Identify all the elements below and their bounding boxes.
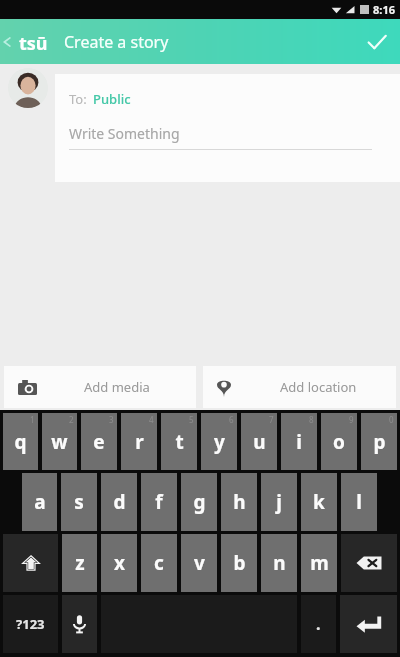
button[interactable]: a <box>22 473 57 531</box>
staticText: 5 <box>189 414 194 425</box>
button[interactable]: Add location <box>203 366 396 408</box>
button[interactable]: d <box>101 473 137 531</box>
staticText: m <box>310 550 329 576</box>
staticText: 4 <box>149 414 154 425</box>
staticText: j <box>276 489 282 515</box>
button[interactable]: m <box>301 534 337 592</box>
staticText: t <box>175 429 184 455</box>
staticText: q <box>14 429 27 455</box>
button[interactable]: x <box>101 534 137 592</box>
staticText: y <box>214 429 225 455</box>
staticText: f <box>155 489 163 515</box>
staticText: 6 <box>229 414 234 425</box>
staticText: Create a story <box>64 31 169 53</box>
button[interactable]: . <box>301 595 336 653</box>
button[interactable]: t <box>161 413 197 470</box>
button[interactable]: To: <box>55 74 400 182</box>
button[interactable]: n <box>261 534 297 592</box>
staticText: 7 <box>269 414 274 425</box>
button[interactable]: Delete <box>341 534 397 592</box>
staticText: r <box>135 429 144 455</box>
button[interactable]: l <box>341 473 377 531</box>
button[interactable]: q <box>3 413 38 470</box>
staticText: 2 <box>69 414 74 425</box>
staticText: s <box>74 489 84 515</box>
staticText: b <box>233 550 246 576</box>
staticText: i <box>296 429 302 455</box>
staticText: v <box>194 550 205 576</box>
staticText: a <box>34 489 46 515</box>
button[interactable]: f <box>141 473 177 531</box>
button[interactable]: p <box>361 413 397 470</box>
button[interactable]: Enter <box>340 595 397 653</box>
staticText: 9 <box>349 414 354 425</box>
button[interactable]: Shift <box>3 534 58 592</box>
staticText: Write Something <box>69 124 180 143</box>
staticText: o <box>333 429 345 455</box>
staticText: x <box>114 550 125 576</box>
staticText: ?123 <box>16 615 45 633</box>
staticText: 8:16 <box>373 2 395 17</box>
staticText: w <box>51 429 68 455</box>
staticText: u <box>253 429 266 455</box>
staticText: 1 <box>30 414 35 425</box>
button[interactable]: k <box>301 473 337 531</box>
staticText: Public <box>93 90 131 108</box>
button[interactable]: ?123 <box>3 595 58 653</box>
button[interactable]: w <box>42 413 77 470</box>
button[interactable]: g <box>181 473 217 531</box>
button[interactable]: e <box>81 413 117 470</box>
button[interactable]: v <box>181 534 217 592</box>
button[interactable]: r <box>121 413 157 470</box>
button[interactable]: h <box>221 473 257 531</box>
staticText: n <box>273 550 286 576</box>
staticText: To: <box>69 90 87 108</box>
button[interactable]: y <box>201 413 237 470</box>
button[interactable]: s <box>61 473 97 531</box>
staticText: e <box>93 429 105 455</box>
staticText: tsū <box>19 31 48 53</box>
button[interactable]: j <box>261 473 297 531</box>
button[interactable]: Add media <box>4 366 196 408</box>
staticText: 0 <box>389 414 394 425</box>
staticText: l <box>356 489 362 515</box>
staticText: p <box>373 429 386 455</box>
staticText: 8 <box>309 414 314 425</box>
button[interactable]: Post story <box>354 19 400 64</box>
button[interactable]: Back <box>0 19 16 64</box>
staticText: g <box>193 489 206 515</box>
button[interactable]: Voice input <box>62 595 97 653</box>
button[interactable]: o <box>321 413 357 470</box>
staticText: k <box>313 489 325 515</box>
staticText: Add media <box>84 378 196 396</box>
staticText: 3 <box>109 414 114 425</box>
button[interactable]: u <box>241 413 277 470</box>
button[interactable]: c <box>141 534 177 592</box>
staticText: Add location <box>280 378 396 396</box>
button[interactable]: b <box>221 534 257 592</box>
staticText: z <box>75 550 85 576</box>
button[interactable]: z <box>62 534 97 592</box>
staticText: . <box>316 613 321 635</box>
staticText: c <box>154 550 164 576</box>
staticText: h <box>233 489 246 515</box>
staticText: d <box>113 489 126 515</box>
button[interactable]: i <box>281 413 317 470</box>
button[interactable]: Profile photo <box>8 68 48 108</box>
